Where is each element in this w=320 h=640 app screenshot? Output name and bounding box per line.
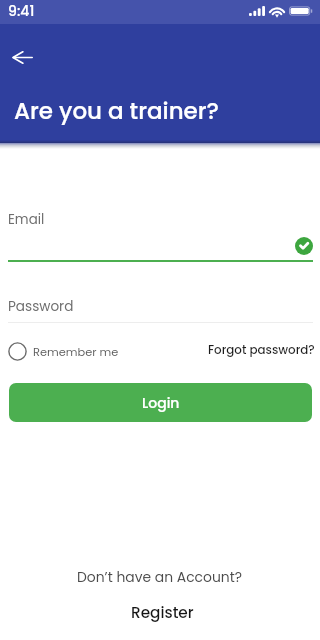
staticText: Password <box>8 297 74 316</box>
staticText: 9:41 <box>8 1 35 21</box>
staticText: Email <box>8 210 45 229</box>
staticText: Don’t have an Account? <box>77 567 243 586</box>
staticText: Login <box>142 393 180 413</box>
button[interactable]: Login <box>9 383 312 422</box>
staticText: Remember me <box>33 344 119 360</box>
button[interactable]: Forgot password? <box>206 340 317 361</box>
button[interactable]: Register <box>127 600 198 625</box>
staticText: Are you a trainer? <box>14 95 219 127</box>
button[interactable]: Remember me <box>8 342 119 361</box>
button[interactable]: Back <box>2 37 42 77</box>
